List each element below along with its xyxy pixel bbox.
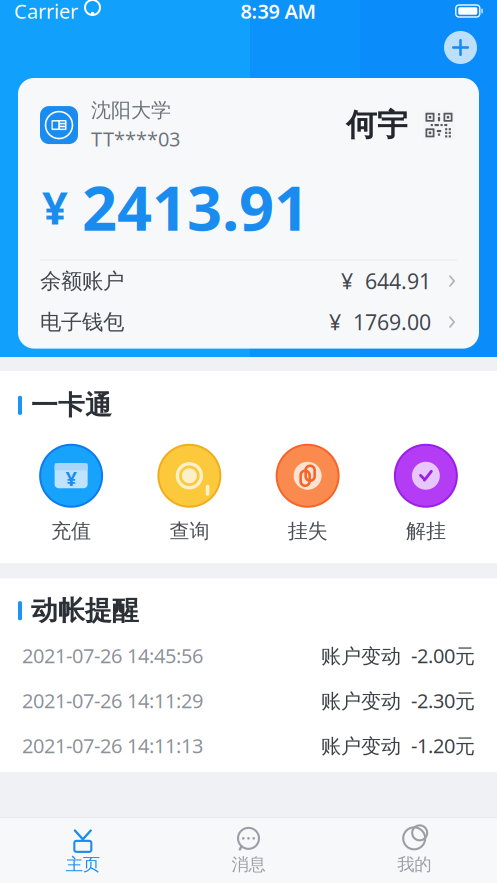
button[interactable]: Show QR code — [421, 107, 457, 143]
button[interactable]: ¥ — [12, 444, 130, 543]
staticText: 2413.91 — [82, 166, 309, 247]
staticText: 主页 — [66, 854, 100, 875]
button[interactable]: Add card — [444, 31, 477, 64]
staticText: 沈阳大学 — [91, 98, 171, 123]
staticText: 2021-07-26 14:11:29 — [22, 687, 203, 714]
staticText: 解挂 — [406, 519, 446, 543]
staticText: 账户变动 -2.30元 — [321, 687, 475, 714]
staticText: 电子钱包 — [40, 309, 124, 335]
staticText: 账户变动 -1.20元 — [321, 732, 475, 759]
button[interactable]: 余额账户 — [18, 261, 479, 302]
staticText: ¥ 644.91 — [341, 267, 431, 295]
staticText: 余额账户 — [40, 268, 124, 294]
staticText: 8:39 AM — [240, 0, 316, 24]
staticText: ¥ 1769.00 — [329, 308, 431, 336]
staticText: Carrier — [14, 0, 78, 24]
button[interactable]: 挂失 — [248, 444, 367, 543]
button[interactable]: 解挂 — [367, 444, 485, 543]
staticText: 动帐提醒 — [31, 594, 139, 627]
button[interactable]: 主页 — [0, 820, 166, 881]
staticText: 挂失 — [288, 519, 328, 543]
button[interactable]: 电子钱包 — [18, 302, 479, 343]
staticText: TT****03 — [91, 126, 180, 152]
staticText: ¥ — [66, 465, 77, 492]
button[interactable]: 消息 — [166, 820, 331, 881]
staticText: 充值 — [51, 519, 91, 543]
staticText: ¥ — [42, 177, 68, 237]
staticText: 查询 — [169, 519, 209, 543]
staticText: 2021-07-26 14:45:56 — [22, 642, 203, 669]
button[interactable]: 我的 — [331, 820, 497, 881]
staticText: 我的 — [397, 854, 431, 875]
staticText: 2021-07-26 14:11:13 — [22, 732, 203, 759]
button[interactable]: 查询 — [130, 444, 248, 543]
staticText: 何宇 — [346, 106, 408, 144]
staticText: 消息 — [231, 854, 265, 875]
staticText: 一卡通 — [31, 389, 112, 422]
staticText: 账户变动 -2.00元 — [321, 642, 475, 669]
